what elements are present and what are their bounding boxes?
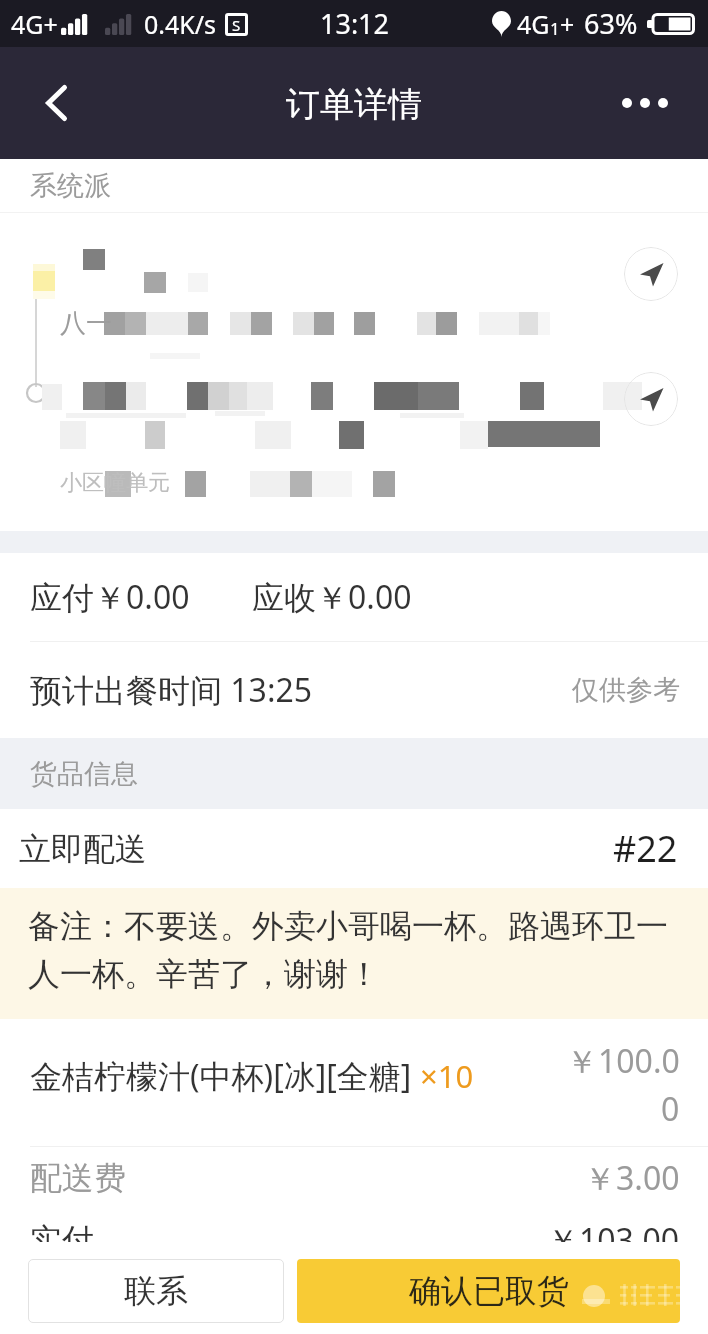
staticText: #22 <box>613 824 678 873</box>
staticText: 63% <box>584 5 638 42</box>
staticText: 系统派 <box>30 169 111 203</box>
staticText: + <box>560 7 575 41</box>
staticText: ￥3.00 <box>584 1156 680 1200</box>
staticText: S <box>232 15 241 35</box>
staticText: 应付￥0.00 <box>30 575 190 619</box>
staticText: 4G+ <box>11 7 58 41</box>
button[interactable]: Navigate <box>624 247 678 301</box>
staticText: 1 <box>550 17 560 40</box>
staticText: 0 <box>661 1087 680 1131</box>
staticText: 确认已取货 <box>409 1271 569 1311</box>
button[interactable]: 联系 <box>28 1259 284 1323</box>
staticText: ￥100.0 <box>566 1039 680 1083</box>
button[interactable]: 确认已取货 <box>297 1259 680 1323</box>
staticText: 货品信息 <box>30 757 138 791</box>
staticText: 金桔柠檬汁(中杯)[冰][全糖] <box>30 1054 420 1098</box>
button[interactable]: Back <box>0 47 110 159</box>
staticText: 预计出餐时间 13:25 <box>30 668 313 712</box>
staticText: 备注：不要送。外卖小哥喝一杯。路遇环卫一人一杯。辛苦了，谢谢！ <box>28 906 690 994</box>
staticText: ×10 <box>420 1055 474 1097</box>
staticText: 仅供参考 <box>572 673 680 707</box>
button[interactable]: More options <box>612 47 708 159</box>
staticText: 立即配送 <box>19 829 147 869</box>
staticText: 实付 <box>30 1220 94 1260</box>
staticText: 4G <box>517 7 550 41</box>
staticText: ￥103.00 <box>547 1218 680 1262</box>
staticText: 配送费 <box>30 1158 126 1198</box>
staticText: 联系 <box>124 1271 188 1311</box>
staticText: 应收￥0.00 <box>252 575 412 619</box>
staticText: 0.4K/s <box>144 7 217 41</box>
staticText: 订单详情 <box>286 83 422 126</box>
button[interactable]: Navigate <box>624 372 678 426</box>
staticText: 八一 <box>60 307 112 340</box>
button[interactable]: 立即配送 <box>0 809 708 888</box>
staticText: 13:12 <box>320 5 390 42</box>
staticText: 小区幢单元 <box>60 469 170 497</box>
